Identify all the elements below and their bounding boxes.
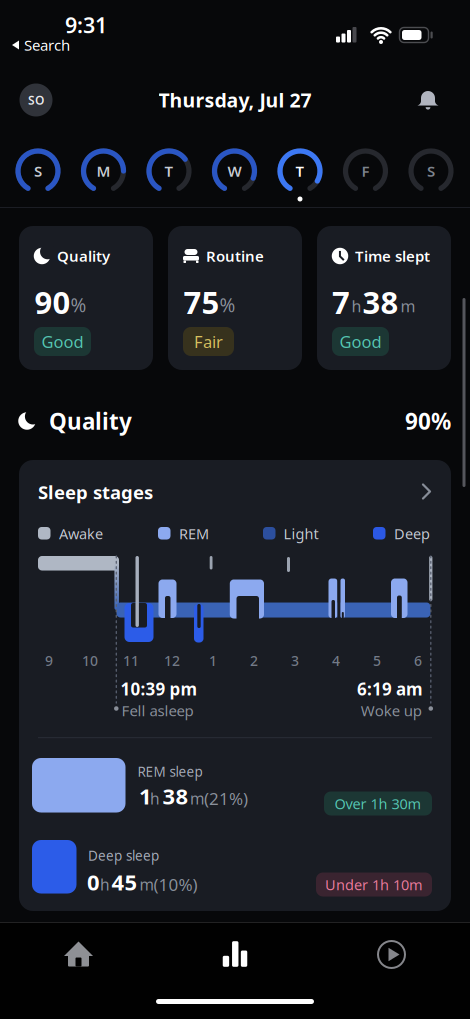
staticText: 4 — [332, 651, 340, 670]
staticText: 5 — [373, 651, 381, 670]
staticText: 9:31 — [65, 10, 107, 40]
button[interactable]: Thursday — [277, 148, 323, 194]
staticText: S — [427, 161, 435, 181]
button[interactable]: Wednesday — [211, 148, 257, 194]
button[interactable]: Quality — [19, 226, 153, 370]
staticText: REM sleep — [137, 762, 202, 781]
staticText: 90% — [405, 406, 451, 436]
staticText: 1 — [209, 651, 217, 670]
staticText: 6 — [414, 651, 422, 670]
staticText: 7 — [332, 281, 350, 323]
staticText: 3 — [291, 651, 299, 670]
staticText: Quality — [57, 246, 110, 266]
staticText: 10 — [82, 651, 98, 670]
staticText: Good — [41, 330, 83, 353]
staticText: m — [139, 874, 153, 895]
staticText: h — [351, 295, 361, 317]
staticText: m — [400, 295, 415, 317]
staticText: Sleep stages — [38, 479, 153, 505]
staticText: Good — [339, 330, 381, 353]
staticText: T — [295, 161, 304, 181]
button[interactable]: Statistics — [223, 941, 247, 967]
staticText: Awake — [59, 524, 103, 543]
staticText: 38 — [362, 281, 398, 323]
staticText: (21%) — [204, 787, 248, 810]
staticText: SO — [28, 92, 44, 108]
staticText: 10:39 pm — [120, 677, 197, 701]
button[interactable]: Notifications — [415, 87, 441, 113]
staticText: 12 — [164, 651, 180, 670]
staticText: 6:19 am — [357, 677, 423, 701]
staticText: Deep sleep — [88, 846, 159, 865]
staticText: % — [219, 292, 235, 318]
staticText: S — [34, 161, 42, 181]
button[interactable]: Tuesday — [146, 148, 192, 194]
staticText: T — [164, 161, 173, 181]
button[interactable]: Profile — [19, 83, 52, 116]
button[interactable]: Sunday — [15, 148, 61, 194]
staticText: Woke up — [361, 700, 422, 721]
staticText: (10%) — [153, 873, 197, 896]
staticText: W — [227, 161, 241, 181]
button[interactable]: Back to Search — [11, 36, 81, 54]
staticText: h — [100, 874, 110, 895]
staticText: Fell asleep — [121, 700, 193, 721]
staticText: h — [150, 788, 160, 809]
staticText: Fair — [194, 330, 223, 353]
staticText: 2 — [250, 651, 258, 670]
button[interactable]: Time slept — [317, 226, 451, 370]
staticText: 75 — [183, 281, 219, 323]
staticText: Quality — [49, 406, 132, 436]
staticText: 90 — [34, 281, 70, 323]
staticText: Light — [283, 524, 318, 543]
staticText: Deep — [394, 524, 430, 543]
button[interactable]: Sleep aid — [378, 941, 405, 968]
button[interactable]: Monday — [80, 148, 126, 194]
staticText: Under 1h 10m — [325, 875, 423, 894]
staticText: 9 — [45, 651, 53, 670]
staticText: Over 1h 30m — [334, 794, 421, 813]
staticText: 11 — [123, 651, 139, 670]
staticText: Search — [24, 35, 70, 55]
staticText: Routine — [206, 246, 264, 266]
staticText: Time slept — [355, 246, 430, 266]
staticText: 1 — [139, 781, 152, 811]
button[interactable]: Routine — [168, 226, 302, 370]
staticText: m — [190, 788, 204, 809]
button[interactable]: Home — [64, 941, 93, 966]
staticText: % — [70, 292, 86, 318]
button[interactable]: Sleep stages details — [19, 470, 451, 514]
staticText: 45 — [111, 867, 137, 897]
staticText: 38 — [162, 781, 188, 811]
staticText: Thursday, Jul 27 — [158, 87, 311, 113]
button[interactable]: Saturday — [408, 148, 454, 194]
staticText: 0 — [87, 867, 100, 897]
button[interactable]: Friday — [342, 148, 388, 194]
staticText: REM — [179, 524, 209, 543]
staticText: M — [96, 161, 110, 181]
staticText: F — [361, 161, 369, 181]
